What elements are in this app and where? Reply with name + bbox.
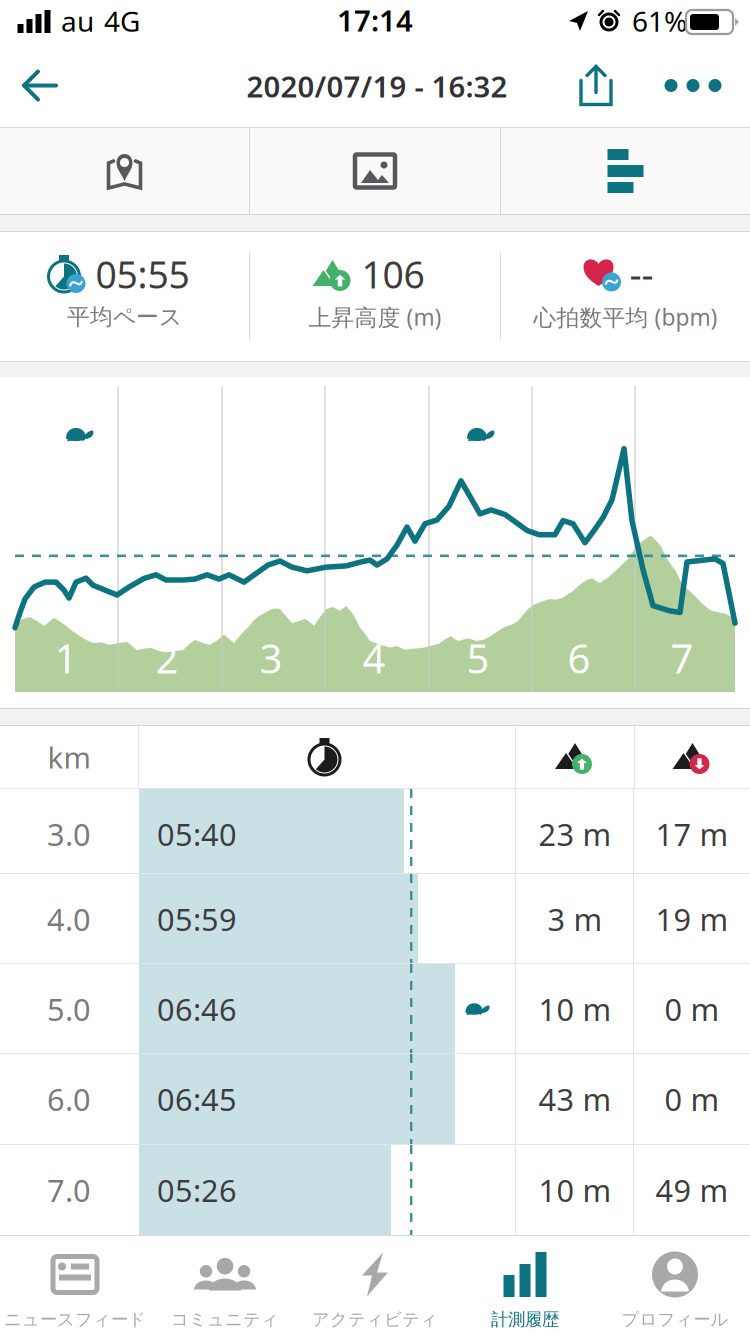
staticText: 2020/07/19 - 16:32 bbox=[246, 66, 507, 105]
staticText: 5.0 bbox=[47, 989, 91, 1029]
staticText: 23 m bbox=[538, 814, 611, 854]
staticText: 6.0 bbox=[47, 1079, 91, 1119]
staticText: 43 m bbox=[538, 1079, 611, 1119]
staticText: 0 m bbox=[664, 1079, 719, 1119]
staticText: 3 m bbox=[547, 899, 602, 939]
staticText: 06:46 bbox=[157, 989, 237, 1029]
button[interactable]: ニュースフィード bbox=[0, 1235, 150, 1334]
staticText: 17 m bbox=[655, 814, 728, 854]
button[interactable]: Share bbox=[556, 44, 636, 127]
button[interactable]: プロフィール bbox=[600, 1235, 750, 1334]
staticText: 49 m bbox=[655, 1170, 728, 1210]
staticText: 計測履歴 bbox=[491, 1309, 559, 1330]
staticText: 06:45 bbox=[157, 1079, 237, 1119]
staticText: プロフィール bbox=[621, 1309, 728, 1330]
staticText: 心拍数平均 (bpm) bbox=[533, 302, 717, 332]
staticText: 05:40 bbox=[157, 814, 237, 854]
button[interactable]: Map bbox=[0, 128, 249, 214]
staticText: 05:26 bbox=[157, 1170, 237, 1210]
staticText: ニュースフィード bbox=[4, 1309, 146, 1330]
staticText: 17:14 bbox=[337, 0, 413, 39]
staticText: コミュニティ bbox=[171, 1309, 279, 1330]
button[interactable]: コミュニティ bbox=[150, 1235, 300, 1334]
staticText: 10 m bbox=[538, 989, 611, 1029]
button[interactable]: More options bbox=[646, 44, 740, 127]
button[interactable]: 計測履歴 bbox=[450, 1235, 600, 1334]
staticText: アクティビティ bbox=[312, 1309, 438, 1330]
staticText: 6 bbox=[567, 631, 590, 684]
staticText: 2 bbox=[155, 631, 178, 684]
staticText: 4.0 bbox=[47, 899, 91, 939]
staticText: 7 bbox=[670, 631, 693, 684]
staticText: 7.0 bbox=[47, 1170, 91, 1210]
staticText: km bbox=[47, 737, 90, 776]
staticText: 05:55 bbox=[95, 249, 189, 299]
button[interactable]: Splits chart bbox=[501, 128, 750, 214]
staticText: 5 bbox=[466, 631, 489, 684]
staticText: 1 bbox=[54, 631, 77, 684]
staticText: 61% bbox=[632, 2, 687, 40]
staticText: 0 m bbox=[664, 989, 719, 1029]
button[interactable]: Photos bbox=[250, 128, 500, 214]
staticText: 3 bbox=[259, 631, 282, 684]
staticText: 4G bbox=[104, 2, 140, 40]
staticText: 4 bbox=[362, 631, 385, 684]
staticText: au bbox=[61, 2, 94, 40]
staticText: 05:59 bbox=[157, 899, 237, 939]
button[interactable]: アクティビティ bbox=[300, 1235, 450, 1334]
staticText: 19 m bbox=[655, 899, 728, 939]
staticText: 平均ペース bbox=[67, 303, 182, 331]
staticText: 上昇高度 (m) bbox=[308, 302, 441, 332]
staticText: 3.0 bbox=[47, 814, 91, 854]
button[interactable]: Back bbox=[2, 44, 78, 127]
staticText: -- bbox=[629, 249, 653, 299]
staticText: 10 m bbox=[538, 1170, 611, 1210]
staticText: 106 bbox=[361, 249, 424, 299]
